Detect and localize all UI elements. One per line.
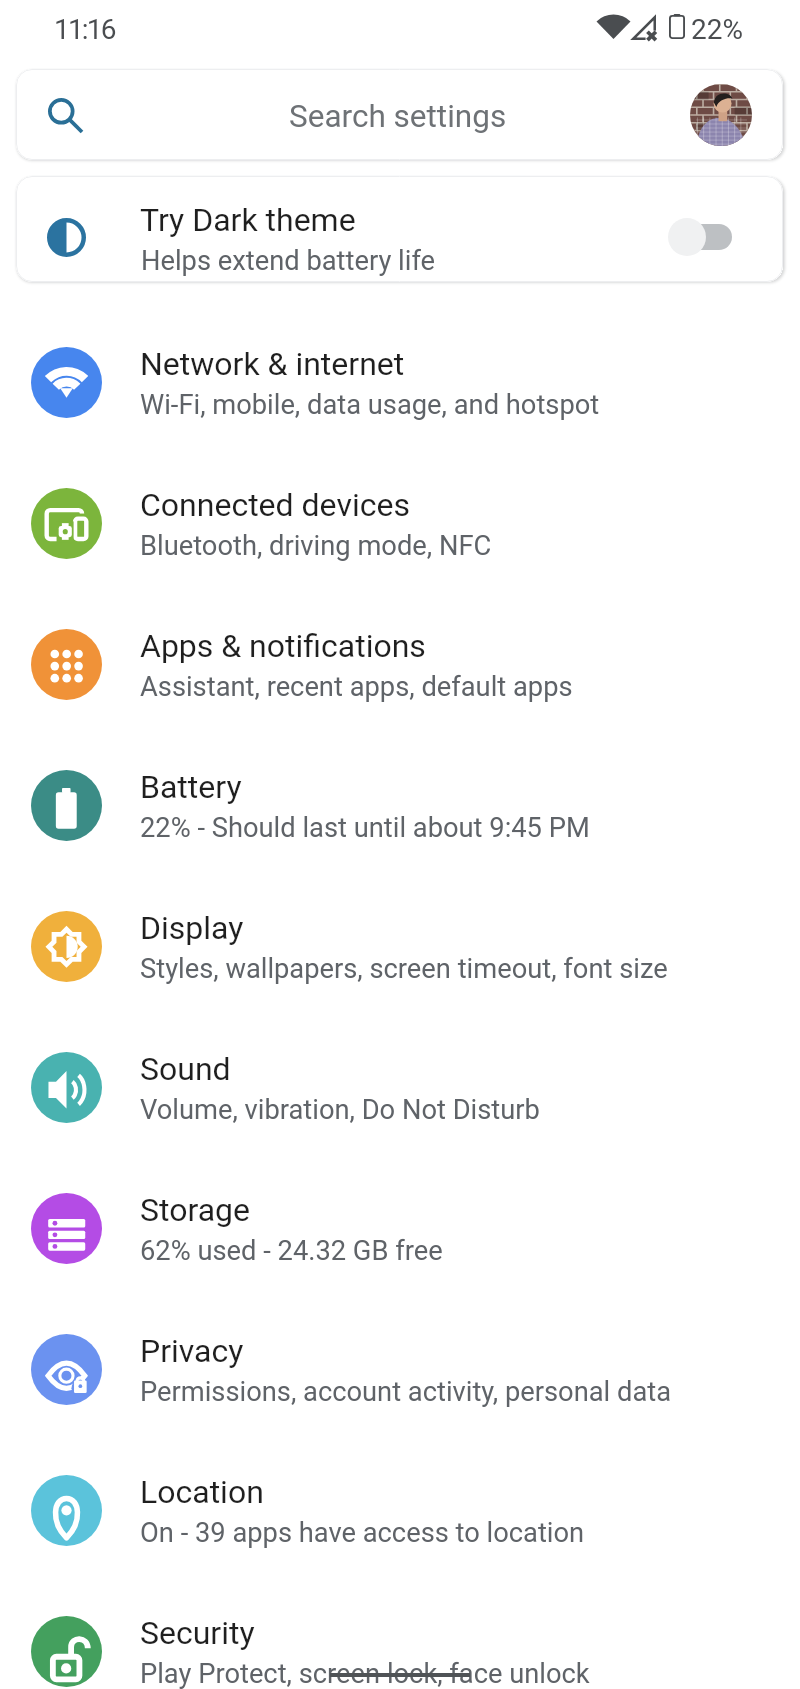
- staticText: Try Dark theme: [140, 201, 356, 239]
- staticText: Styles, wallpapers, screen timeout, font…: [140, 953, 668, 985]
- staticText: Sound: [140, 1050, 231, 1088]
- button[interactable]: Try Dark theme: [16, 176, 783, 282]
- button[interactable]: Battery: [0, 735, 800, 875]
- other: Search: [48, 98, 82, 132]
- button[interactable]: Network & internet: [0, 312, 800, 452]
- staticText: Assistant, recent apps, default apps: [140, 671, 573, 703]
- button[interactable]: Display: [0, 876, 800, 1016]
- staticText: On - 39 apps have access to location: [140, 1517, 585, 1549]
- staticText: Search settings: [289, 98, 507, 135]
- staticText: Connected devices: [140, 486, 410, 524]
- button[interactable]: Storage: [0, 1158, 800, 1298]
- staticText: Display: [140, 909, 244, 947]
- staticText: 22%: [691, 13, 743, 46]
- staticText: Privacy: [140, 1332, 244, 1370]
- staticText: Permissions, account activity, personal …: [140, 1376, 672, 1408]
- button[interactable]: Sound: [0, 1017, 800, 1157]
- staticText: Bluetooth, driving mode, NFC: [140, 530, 492, 562]
- staticText: Apps & notifications: [140, 627, 426, 665]
- staticText: Play Protect, screen lock, face unlock: [140, 1658, 590, 1689]
- staticText: Volume, vibration, Do Not Disturb: [140, 1094, 540, 1126]
- staticText: Wi-Fi, mobile, data usage, and hotspot: [140, 389, 600, 421]
- button[interactable]: Search: [16, 69, 783, 160]
- button[interactable]: Privacy: [0, 1299, 800, 1439]
- button[interactable]: Apps & notifications: [0, 594, 800, 734]
- staticText: Location: [140, 1473, 264, 1511]
- button[interactable]: Account: [690, 84, 752, 146]
- button[interactable]: Location: [0, 1440, 800, 1580]
- button[interactable]: Toggle dark theme: [664, 206, 768, 268]
- staticText: 62% used - 24.32 GB free: [140, 1235, 443, 1267]
- staticText: 22% - Should last until about 9:45 PM: [140, 812, 590, 844]
- button[interactable]: Connected devices: [0, 453, 800, 593]
- staticText: 11:16: [54, 13, 115, 46]
- staticText: Helps extend battery life: [141, 245, 436, 277]
- staticText: Battery: [140, 768, 242, 806]
- staticText: Storage: [140, 1191, 250, 1229]
- staticText: Network & internet: [140, 345, 405, 383]
- staticText: Security: [140, 1614, 255, 1652]
- button[interactable]: Security: [0, 1581, 800, 1689]
